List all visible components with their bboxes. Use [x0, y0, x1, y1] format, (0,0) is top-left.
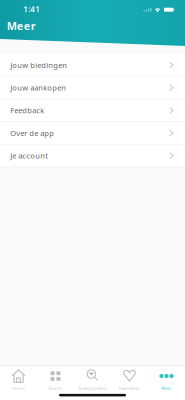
staticText: 1:41	[23, 4, 40, 15]
button[interactable]: Home	[0, 366, 37, 391]
staticText: Jouw aankopen	[10, 83, 66, 93]
staticText: Zoekopdracht	[78, 385, 107, 391]
button[interactable]: Je account	[0, 145, 185, 167]
button[interactable]: Over de app	[0, 122, 185, 145]
staticText: Events	[49, 385, 62, 391]
staticText: Meer	[161, 385, 171, 391]
button[interactable]: Feedback	[0, 99, 185, 122]
button[interactable]: Zoekopdracht	[74, 366, 111, 391]
staticText: Favorieten	[119, 385, 140, 391]
button[interactable]: Jouw aankopen	[0, 77, 185, 99]
button[interactable]: Meer	[148, 366, 185, 391]
staticText: Over de app	[10, 128, 54, 138]
button[interactable]: Favorieten	[111, 366, 148, 391]
staticText: Home	[12, 385, 24, 391]
button[interactable]: Jouw biedingen	[0, 54, 185, 77]
staticText: Feedback	[10, 105, 44, 115]
button[interactable]: Events	[37, 366, 74, 391]
staticText: Meer	[7, 18, 36, 33]
staticText: Jouw biedingen	[10, 60, 67, 70]
staticText: Je account	[10, 151, 48, 161]
